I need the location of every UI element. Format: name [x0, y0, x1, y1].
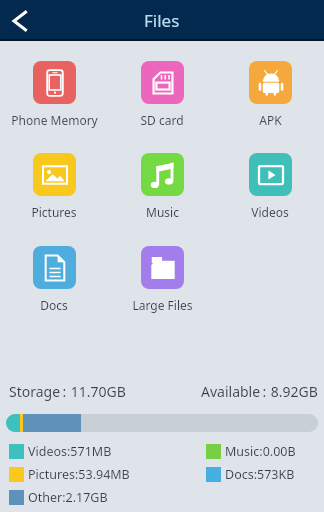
button[interactable]: APK	[216, 61, 324, 128]
button[interactable]: SD card	[108, 61, 216, 128]
staticText: Other:2.17GB	[28, 489, 108, 506]
staticText: Docs	[40, 297, 68, 313]
button[interactable]: Music	[108, 153, 216, 220]
staticText: Large Files	[132, 297, 193, 313]
button[interactable]: Phone Memory	[0, 61, 108, 128]
staticText: Videos	[251, 204, 289, 220]
button[interactable]: Large Files	[108, 246, 216, 313]
staticText: Storage : 11.70GB	[9, 382, 126, 401]
button[interactable]: Back	[0, 1, 38, 39]
staticText: Videos:571MB	[28, 443, 112, 460]
staticText: SD card	[140, 112, 184, 128]
staticText: Pictures:53.94MB	[28, 466, 130, 483]
staticText: Phone Memory	[11, 112, 98, 128]
staticText: Music	[146, 204, 179, 220]
staticText: Music:0.00B	[225, 443, 296, 460]
staticText: Available : 8.92GB	[201, 382, 318, 401]
staticText: Files	[144, 9, 180, 32]
button[interactable]: Pictures	[0, 153, 108, 220]
staticText: Pictures	[31, 204, 77, 220]
button[interactable]: Docs	[0, 246, 108, 313]
button[interactable]: Videos	[216, 153, 324, 220]
staticText: Docs:573KB	[225, 466, 295, 483]
staticText: APK	[259, 112, 282, 128]
